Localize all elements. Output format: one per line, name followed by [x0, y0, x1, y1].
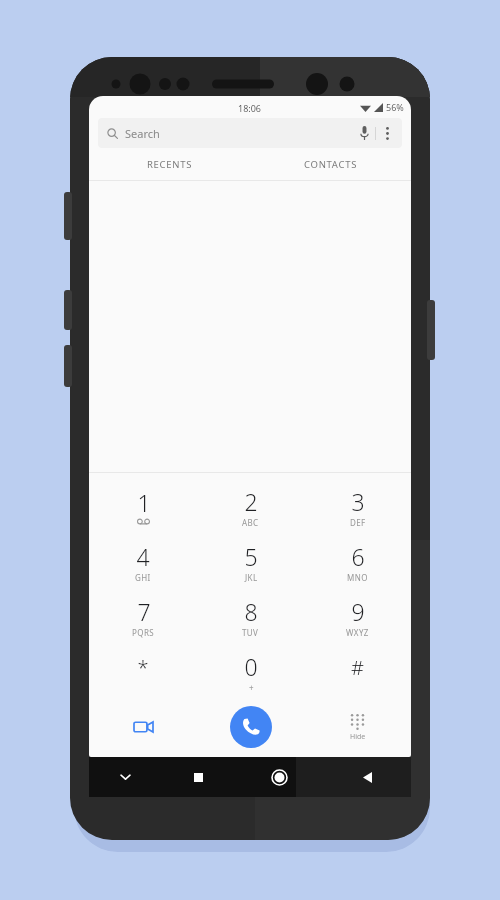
staticText: JKL [245, 572, 258, 583]
button[interactable]: 5 [197, 534, 304, 589]
staticText: 7 [137, 596, 151, 627]
button[interactable]: Video call [89, 699, 197, 755]
button[interactable]: More options [376, 122, 398, 144]
button[interactable]: Back [323, 757, 411, 797]
button[interactable]: Recent apps [162, 757, 235, 797]
button[interactable]: RECENTS [89, 148, 250, 180]
button[interactable]: 4 [89, 534, 197, 589]
staticText: GHI [135, 572, 151, 583]
button[interactable]: Home [235, 757, 323, 797]
staticText: 3 [351, 486, 365, 517]
button[interactable]: 6 [304, 534, 411, 589]
button[interactable]: Search [98, 118, 402, 148]
staticText: + [249, 682, 254, 693]
staticText: # [351, 654, 364, 681]
staticText: 1 [137, 487, 151, 518]
staticText: TUV [242, 627, 259, 638]
button[interactable]: 7 [89, 589, 197, 644]
button[interactable]: # [304, 644, 411, 699]
staticText: RECENTS [147, 158, 193, 171]
button[interactable]: Hide keyboard [89, 757, 162, 797]
button[interactable]: Call [230, 706, 272, 748]
staticText: DEF [350, 517, 366, 528]
staticText: Hide [350, 732, 366, 742]
button[interactable]: Voice search [353, 122, 375, 144]
staticText: 0 [244, 651, 258, 682]
staticText: Search [125, 126, 160, 141]
staticText: 18:06 [238, 102, 262, 114]
staticText: 5 [244, 541, 258, 572]
button[interactable]: 3 [304, 479, 411, 534]
staticText: 2 [244, 486, 258, 517]
button[interactable]: 1 [89, 479, 197, 534]
staticText: MNO [347, 572, 368, 583]
staticText: ABC [242, 517, 259, 528]
staticText: 8 [244, 596, 258, 627]
staticText: * [137, 654, 149, 681]
staticText: 56% [386, 101, 404, 113]
staticText: CONTACTS [304, 158, 358, 171]
button[interactable]: 8 [197, 589, 304, 644]
staticText: 9 [351, 596, 365, 627]
staticText: PQRS [132, 627, 155, 638]
button[interactable]: 0 [197, 644, 304, 699]
button[interactable]: 2 [197, 479, 304, 534]
button[interactable]: 9 [304, 589, 411, 644]
button[interactable]: * [89, 644, 197, 699]
button[interactable]: CONTACTS [250, 148, 411, 180]
staticText: 6 [351, 541, 365, 572]
staticText: WXYZ [346, 627, 369, 638]
button[interactable]: Hide dialpad [304, 699, 411, 755]
staticText: 4 [136, 541, 150, 572]
